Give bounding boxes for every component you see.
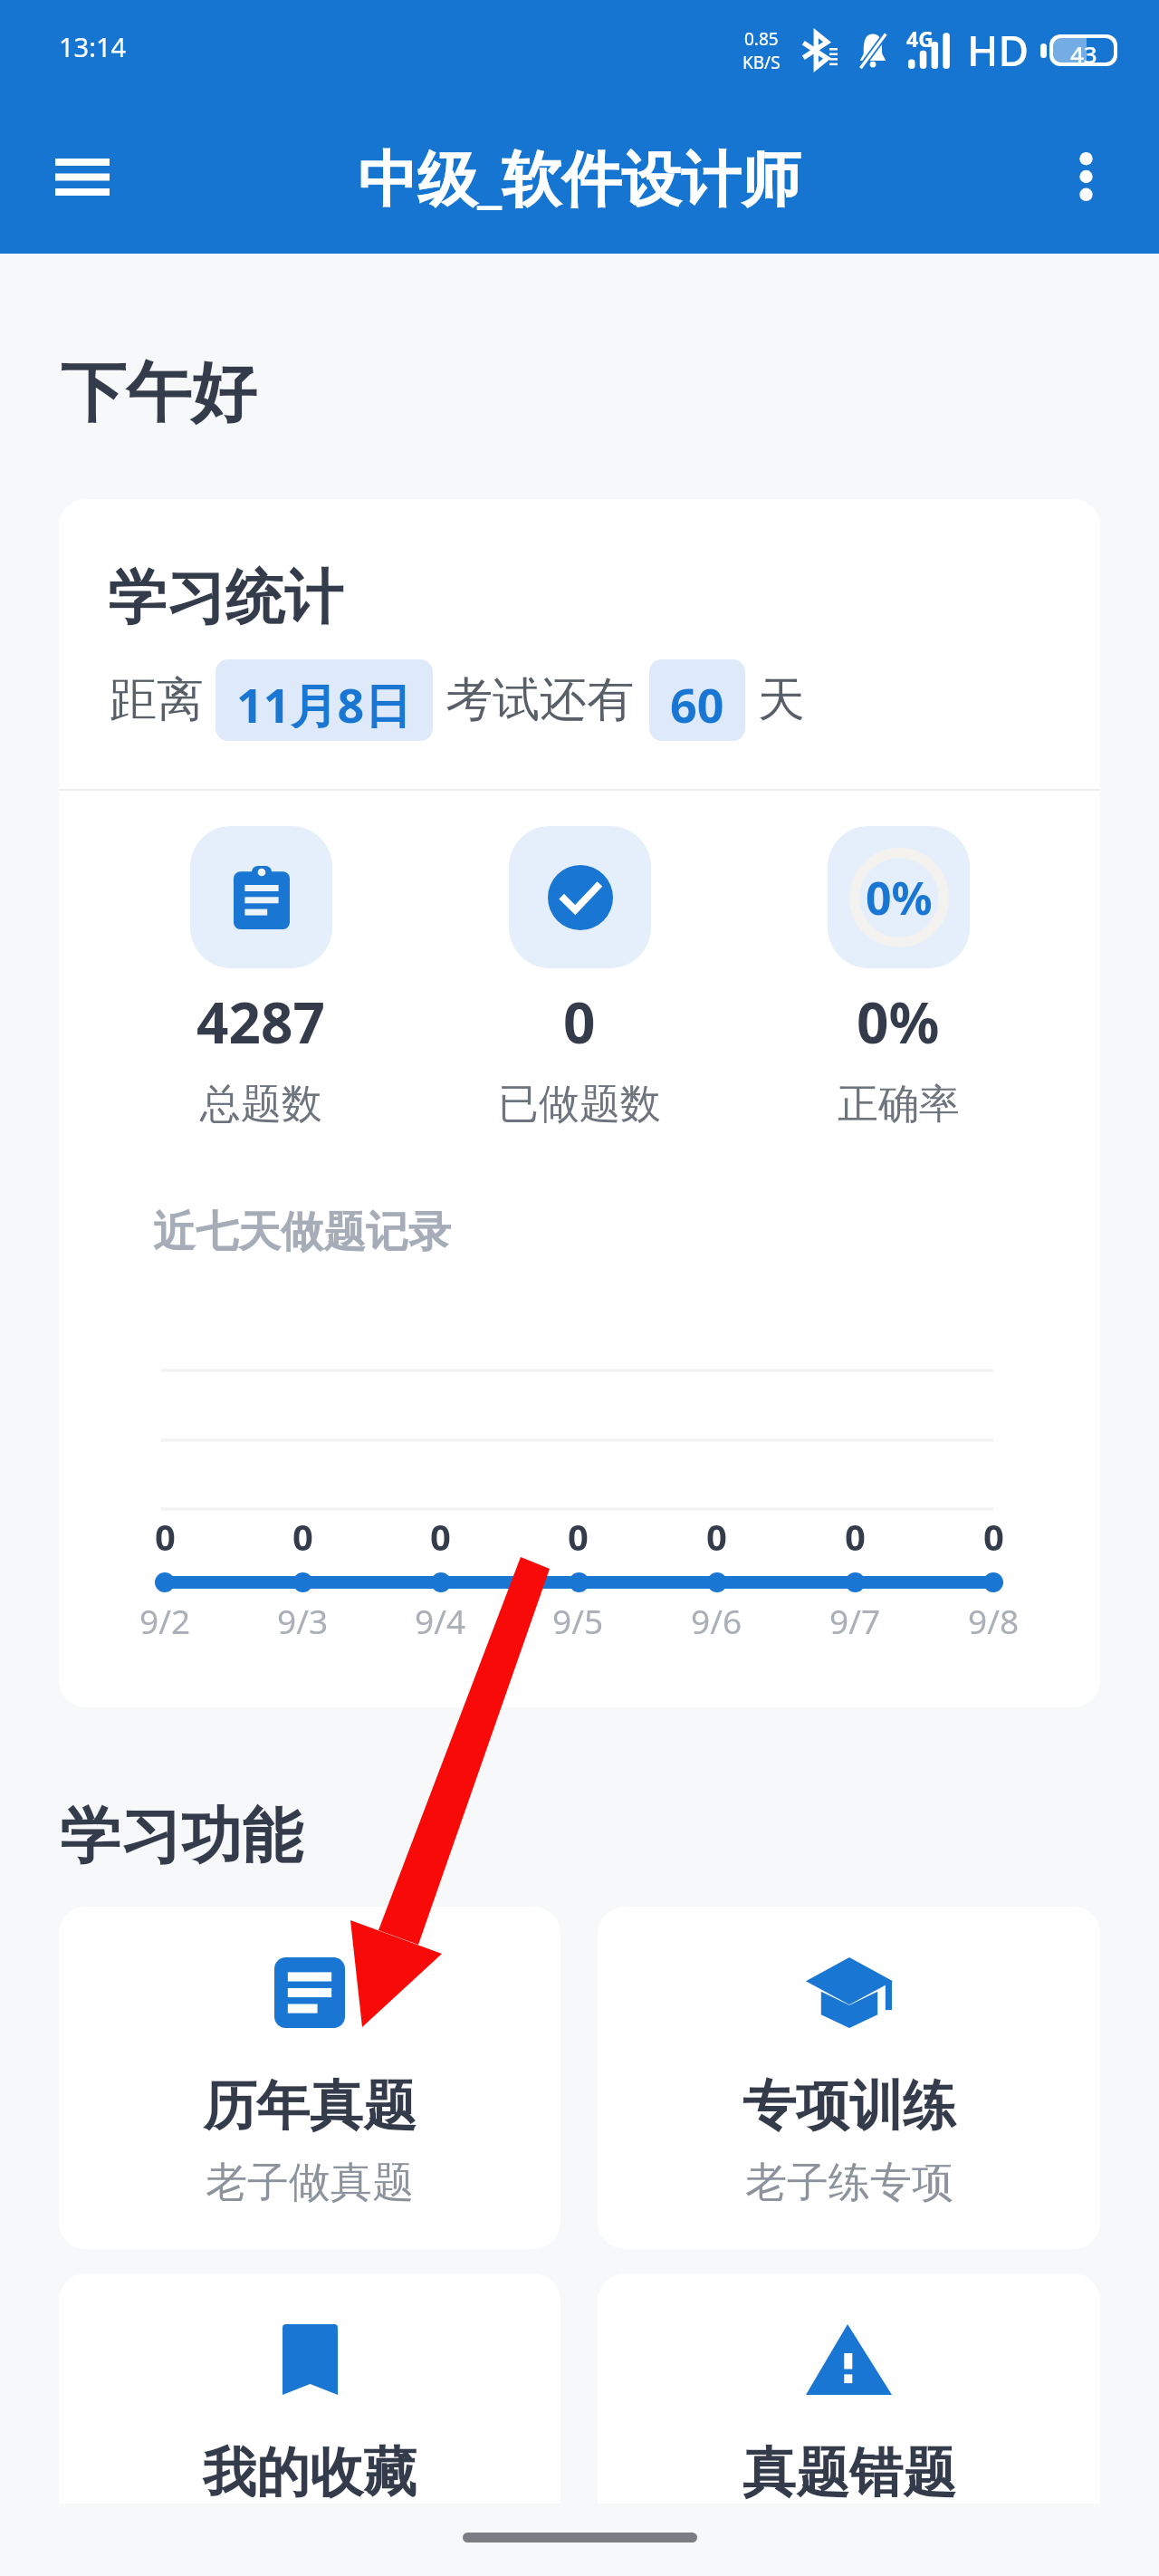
- staticText: KB/S: [742, 51, 781, 74]
- staticText: 学习功能: [60, 1798, 302, 1874]
- staticText: 天: [758, 670, 805, 730]
- staticText: 13:14: [59, 29, 127, 64]
- button[interactable]: 真题错题: [598, 2273, 1100, 2504]
- button[interactable]: 专项训练: [598, 1907, 1100, 2249]
- staticText: 历年真题: [203, 2072, 417, 2139]
- staticText: 43: [1070, 38, 1097, 62]
- staticText: 0: [563, 984, 596, 1060]
- staticText: 总题数: [200, 1079, 322, 1130]
- staticText: 9/6: [691, 1598, 742, 1643]
- staticText: 0: [155, 1512, 176, 1561]
- staticText: 老子练专项: [745, 2157, 953, 2209]
- staticText: 0.85: [744, 27, 779, 51]
- staticText: 4G: [906, 24, 934, 53]
- staticText: 我的收藏: [203, 2439, 417, 2504]
- button[interactable]: More options: [1040, 131, 1131, 222]
- staticText: 9/3: [277, 1598, 329, 1643]
- staticText: 9/8: [968, 1598, 1020, 1643]
- staticText: 0: [430, 1512, 451, 1561]
- staticText: 9/5: [552, 1598, 604, 1643]
- staticText: 老子做真题: [206, 2157, 414, 2209]
- staticText: 已做题数: [498, 1079, 661, 1130]
- staticText: 中级_软件设计师: [358, 136, 801, 217]
- staticText: 距离: [110, 670, 204, 730]
- staticText: 0: [706, 1512, 727, 1561]
- staticText: 专项训练: [742, 2072, 956, 2139]
- staticText: 正确率: [838, 1079, 960, 1130]
- staticText: HD: [967, 22, 1030, 79]
- button[interactable]: 我的收藏: [59, 2273, 560, 2504]
- staticText: 下午好: [61, 352, 256, 435]
- staticText: 0: [292, 1512, 313, 1561]
- staticText: 0%: [857, 984, 940, 1060]
- staticText: 近七天做题记录: [153, 1206, 451, 1259]
- button[interactable]: 历年真题: [59, 1907, 560, 2249]
- staticText: 真题错题: [742, 2439, 956, 2504]
- staticText: 学习统计: [108, 561, 343, 635]
- staticText: 考试还有: [445, 670, 634, 730]
- staticText: 11月8日: [236, 672, 412, 728]
- staticText: 0: [568, 1512, 589, 1561]
- staticText: 4287: [196, 984, 325, 1060]
- button[interactable]: Menu: [37, 131, 128, 222]
- staticText: 9/7: [829, 1598, 881, 1643]
- staticText: 0: [845, 1512, 866, 1561]
- staticText: 9/4: [415, 1598, 466, 1643]
- staticText: 9/2: [139, 1598, 191, 1643]
- staticText: 60: [670, 672, 724, 728]
- staticText: 0%: [866, 867, 933, 928]
- staticText: 0: [983, 1512, 1004, 1561]
